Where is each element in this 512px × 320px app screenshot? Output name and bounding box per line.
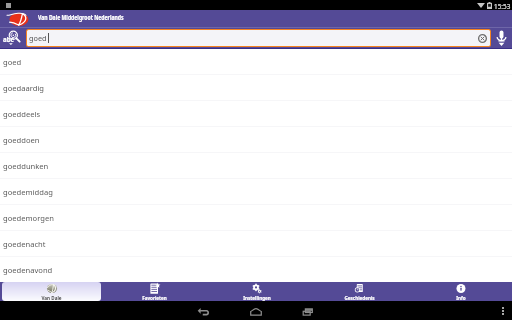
- button[interactable]: goedemorgen: [0, 205, 512, 231]
- button[interactable]: goed: [0, 49, 512, 75]
- button[interactable]: Recent apps: [298, 301, 318, 320]
- button[interactable]: Instellingen: [208, 282, 306, 301]
- staticText: goed: [3, 57, 22, 67]
- staticText: Favorieten: [142, 294, 167, 301]
- button[interactable]: goed: [27, 30, 490, 46]
- button[interactable]: Voice search: [491, 27, 512, 49]
- staticText: goedaardig: [3, 83, 45, 93]
- staticText: goedenavond: [3, 265, 53, 275]
- button[interactable]: More options: [496, 301, 510, 320]
- button[interactable]: Info: [412, 282, 510, 301]
- button[interactable]: goedenacht: [0, 231, 512, 257]
- staticText: Geschiedenis: [344, 294, 375, 301]
- staticText: goeddeels: [3, 109, 41, 119]
- button[interactable]: goeddeels: [0, 101, 512, 127]
- staticText: goedenacht: [3, 239, 46, 249]
- staticText: goedemorgen: [3, 213, 54, 223]
- staticText: Info: [456, 294, 466, 301]
- staticText: Instellingen: [243, 294, 271, 301]
- button[interactable]: goedenavond: [0, 257, 512, 282]
- staticText: Van Dale Middelgroot Nederlands: [38, 14, 124, 23]
- staticText: goedemiddag: [3, 187, 53, 197]
- staticText: Van Dale: [41, 294, 62, 301]
- staticText: goed: [29, 33, 47, 43]
- button[interactable]: goedemiddag: [0, 179, 512, 205]
- staticText: 15:53: [494, 2, 511, 11]
- button[interactable]: goeddoen: [0, 127, 512, 153]
- button[interactable]: Select dictionary: [0, 27, 26, 49]
- staticText: goeddunken: [3, 161, 49, 171]
- button[interactable]: Favorieten: [105, 282, 204, 301]
- staticText: abc: [3, 35, 14, 43]
- button[interactable]: Back: [193, 301, 213, 320]
- button[interactable]: goeddunken: [0, 153, 512, 179]
- staticText: goeddoen: [3, 135, 40, 145]
- button[interactable]: goedaardig: [0, 75, 512, 101]
- button[interactable]: Home: [246, 301, 266, 320]
- button[interactable]: Van Dale: [2, 282, 101, 301]
- button[interactable]: Geschiedenis: [310, 282, 408, 301]
